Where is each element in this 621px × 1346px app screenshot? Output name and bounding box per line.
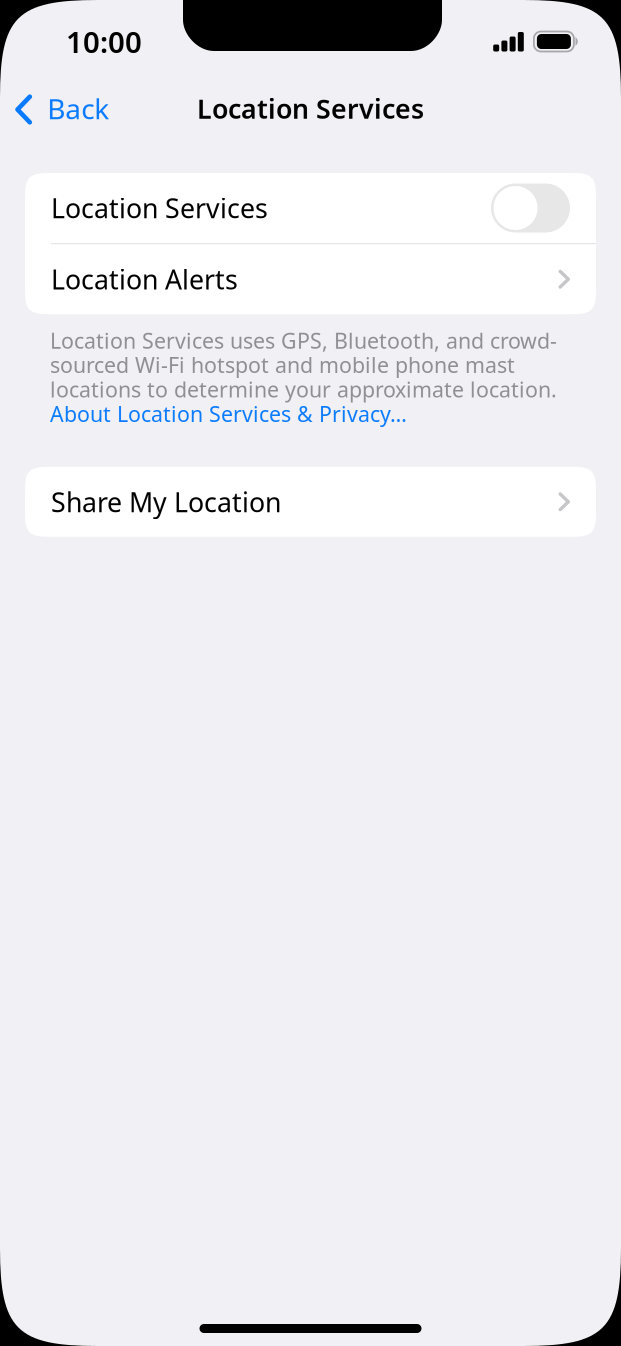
- staticText: Location Services: [197, 91, 424, 126]
- staticText: Location Services uses GPS, Bluetooth, a…: [50, 326, 557, 354]
- staticText: Share My Location: [51, 484, 281, 519]
- button[interactable]: Location Alerts: [25, 244, 596, 314]
- button[interactable]: About Location Services & Privacy…: [50, 401, 407, 426]
- staticText: locations to determine your approximate …: [50, 375, 557, 403]
- button[interactable]: Back: [0, 82, 123, 135]
- staticText: Back: [47, 90, 109, 127]
- button[interactable]: Share My Location: [25, 467, 596, 537]
- staticText: 10:00: [66, 22, 142, 61]
- staticText: sourced Wi-Fi hotspot and mobile phone m…: [50, 351, 515, 379]
- button[interactable]: Location Services: [25, 173, 596, 243]
- staticText: Location Services: [51, 190, 268, 226]
- staticText: Location Alerts: [51, 261, 238, 297]
- staticText: About Location Services & Privacy…: [50, 399, 407, 428]
